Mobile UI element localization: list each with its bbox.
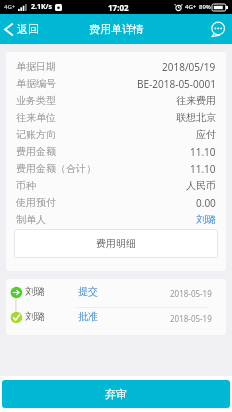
staticText: 刘璐 bbox=[196, 213, 216, 226]
staticText: 4G+ bbox=[185, 3, 197, 11]
staticText: 批准 bbox=[78, 310, 98, 323]
button[interactable]: 刘璐 bbox=[6, 304, 226, 332]
staticText: 刘璐 bbox=[25, 285, 45, 298]
staticText: 2018-05-19 bbox=[170, 313, 212, 324]
staticText: BE-2018-05-0001 bbox=[137, 77, 216, 91]
staticText: 应付 bbox=[196, 128, 216, 141]
staticText: 提交 bbox=[78, 285, 98, 298]
staticText: 币种 bbox=[16, 179, 36, 192]
staticText: 返回 bbox=[17, 22, 39, 36]
staticText: 4G+ bbox=[4, 3, 16, 11]
button[interactable]: 弃审 bbox=[2, 380, 230, 408]
staticText: 11.10 bbox=[190, 162, 216, 176]
button[interactable]: 费用明细 bbox=[14, 229, 218, 258]
staticText: 费用金额 bbox=[16, 145, 56, 158]
staticText: 17:02 bbox=[108, 2, 129, 13]
staticText: 2.1K/s bbox=[31, 2, 53, 12]
staticText: 人民币 bbox=[186, 179, 216, 192]
button[interactable]: 刘璐 bbox=[6, 279, 226, 307]
staticText: 刘璐 bbox=[25, 310, 45, 323]
staticText: 弃审 bbox=[105, 387, 127, 401]
staticText: 往来费用 bbox=[176, 94, 216, 107]
staticText: 费用单详情 bbox=[89, 22, 144, 36]
staticText: 单据编号 bbox=[16, 77, 56, 90]
staticText: 制单人 bbox=[16, 213, 46, 226]
staticText: 11.10 bbox=[190, 145, 216, 159]
button[interactable]: Comments bbox=[202, 16, 232, 42]
staticText: 0.00 bbox=[196, 196, 216, 210]
staticText: 费用明细 bbox=[96, 237, 136, 250]
staticText: 联想北京 bbox=[176, 111, 216, 124]
staticText: 89% bbox=[199, 3, 211, 11]
staticText: 记账方向 bbox=[16, 128, 56, 141]
staticText: 2018/05/19 bbox=[162, 60, 216, 74]
staticText: 往来单位 bbox=[16, 111, 56, 124]
staticText: 单据日期 bbox=[16, 60, 56, 73]
button[interactable]: 返回 bbox=[0, 18, 45, 40]
staticText: 2018-05-19 bbox=[170, 288, 212, 299]
staticText: 费用金额（合计） bbox=[16, 162, 96, 175]
staticText: 使用预付 bbox=[16, 196, 56, 209]
staticText: 业务类型 bbox=[16, 94, 56, 107]
